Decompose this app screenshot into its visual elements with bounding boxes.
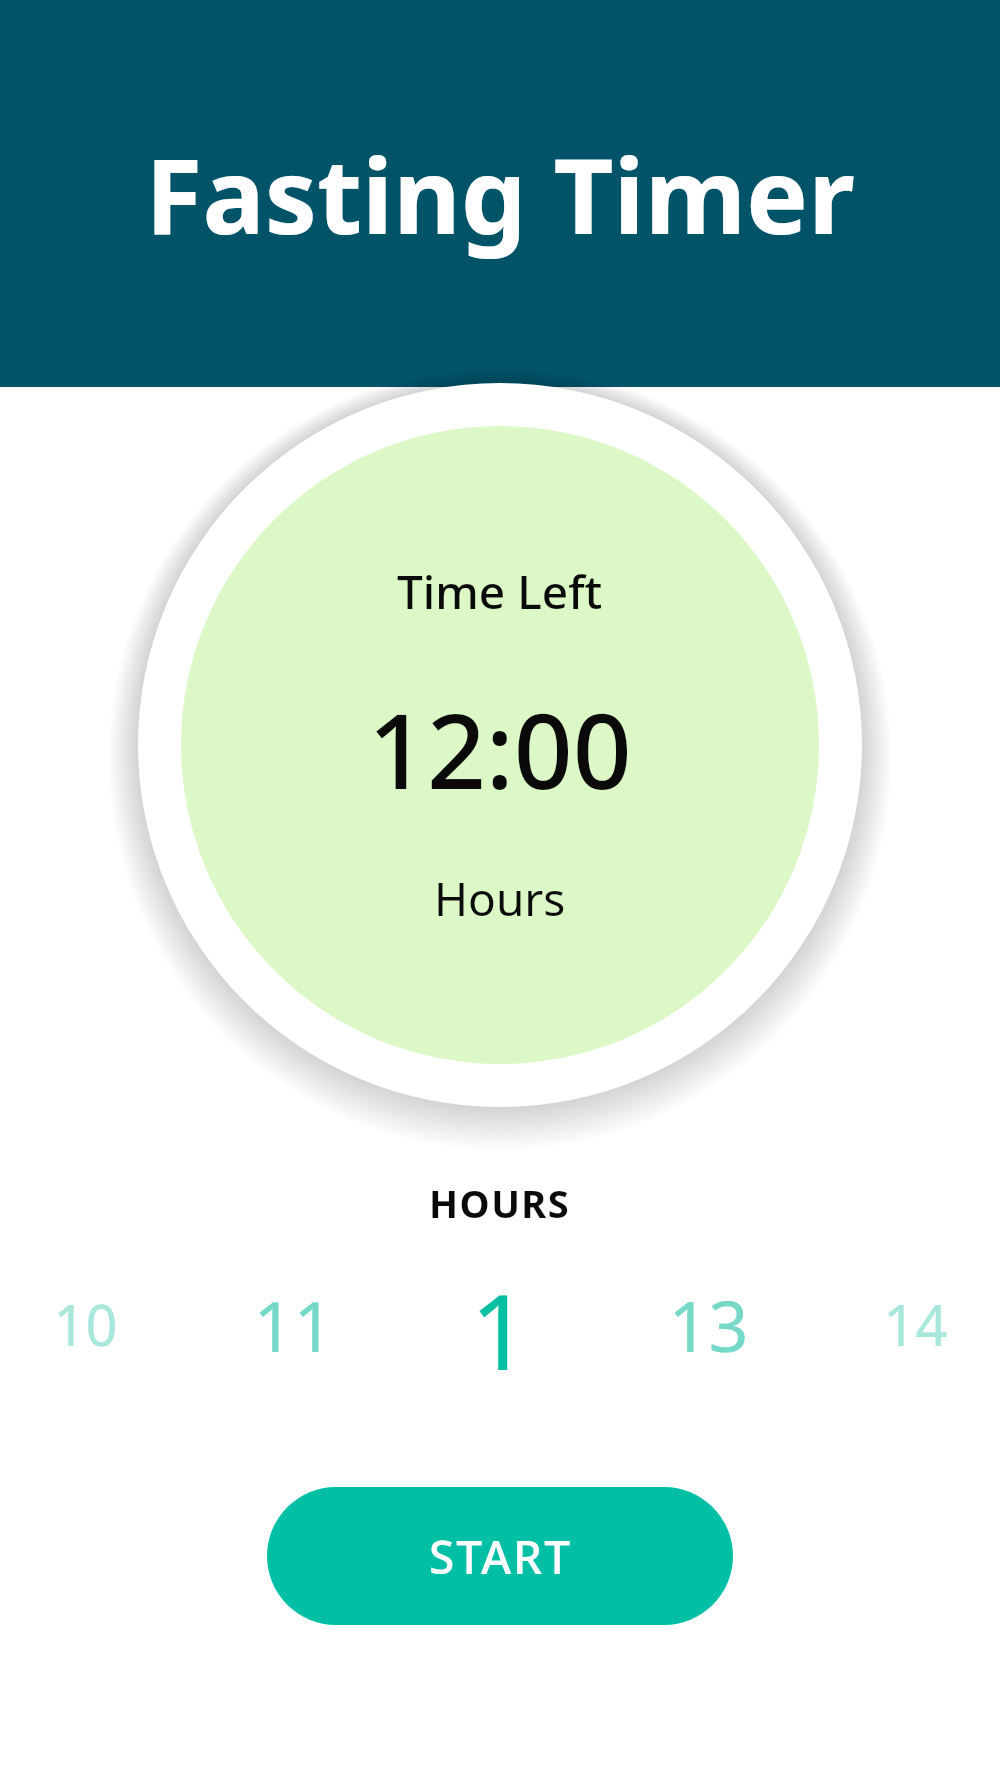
staticText: Time Left [397, 560, 603, 623]
staticText: 11 [253, 1277, 334, 1372]
staticText: Fasting Timer [145, 123, 855, 265]
staticText: 10 [53, 1286, 118, 1362]
button[interactable]: Select 11 hours [234, 1259, 352, 1389]
staticText: 12:00 [368, 679, 632, 819]
staticText: HOURS [429, 1177, 571, 1229]
staticText: Hours [434, 867, 566, 930]
staticText: START [429, 1525, 572, 1588]
staticText: 13 [668, 1277, 749, 1372]
staticText: 12 [441, 1259, 559, 1389]
button[interactable]: Select 13 hours [649, 1259, 767, 1389]
button[interactable]: START [267, 1487, 733, 1625]
button[interactable]: Select 14 hours [856, 1259, 974, 1389]
button[interactable]: Select 10 hours [26, 1259, 144, 1389]
button[interactable]: Select 12 hours [441, 1259, 559, 1389]
staticText: 14 [883, 1286, 948, 1362]
